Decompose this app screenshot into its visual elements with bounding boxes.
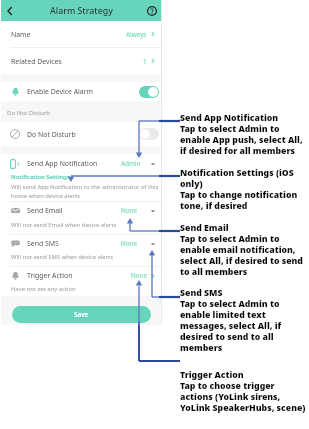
staticText: Will not send SMS when device alerts xyxy=(11,253,114,261)
staticText: Will send App Notification to the admini… xyxy=(11,183,159,199)
staticText: Trigger Action Tap to choose trigger act… xyxy=(180,369,306,414)
button[interactable]: Switch off xyxy=(139,128,159,140)
staticText: Alarm Strategy xyxy=(50,5,113,17)
staticText: Save xyxy=(74,310,89,319)
staticText: Send SMS Tap to select Admin to enable l… xyxy=(180,287,282,354)
button[interactable]: Send SMS xyxy=(1,235,162,252)
button[interactable]: Name xyxy=(1,21,162,47)
staticText: None xyxy=(121,239,138,248)
staticText: Do Not Disturb xyxy=(27,130,76,139)
button[interactable]: Enable Device Alarm xyxy=(1,82,162,101)
staticText: Always xyxy=(126,30,147,39)
staticText: Notification Settings xyxy=(11,173,70,181)
staticText: Have not set any action xyxy=(11,285,76,293)
button[interactable]: Save xyxy=(12,306,151,323)
button[interactable]: Do Not Disturb xyxy=(1,122,162,146)
staticText: Do Not Disturb xyxy=(7,108,50,116)
button[interactable]: Send Email xyxy=(1,202,162,219)
staticText: Send App Notification Tap to select Admi… xyxy=(180,112,303,157)
staticText: None xyxy=(131,271,148,280)
staticText: 1 xyxy=(143,57,147,66)
staticText: Name xyxy=(11,30,31,39)
button[interactable]: Switch on xyxy=(139,86,159,98)
staticText: Send SMS xyxy=(27,239,59,248)
staticText: Send Email Tap to select Admin to enable… xyxy=(180,222,303,278)
button[interactable]: Back xyxy=(1,2,19,20)
staticText: Will not send Email when device alerts xyxy=(11,221,117,229)
button[interactable]: Related Devices xyxy=(1,48,162,74)
button[interactable]: Send App Notification xyxy=(1,154,162,173)
staticText: Notification Settings (iOS only) Tap to … xyxy=(180,167,298,212)
staticText: None xyxy=(121,206,138,215)
staticText: Send Email xyxy=(27,206,63,215)
staticText: Trigger Action xyxy=(27,271,73,280)
staticText: Send App Notification xyxy=(27,159,98,168)
staticText: Admin xyxy=(121,159,141,168)
staticText: Related Devices xyxy=(11,57,62,66)
button[interactable]: Trigger Action xyxy=(1,267,162,284)
staticText: Enable Device Alarm xyxy=(27,87,94,96)
button[interactable]: Help xyxy=(143,2,161,20)
